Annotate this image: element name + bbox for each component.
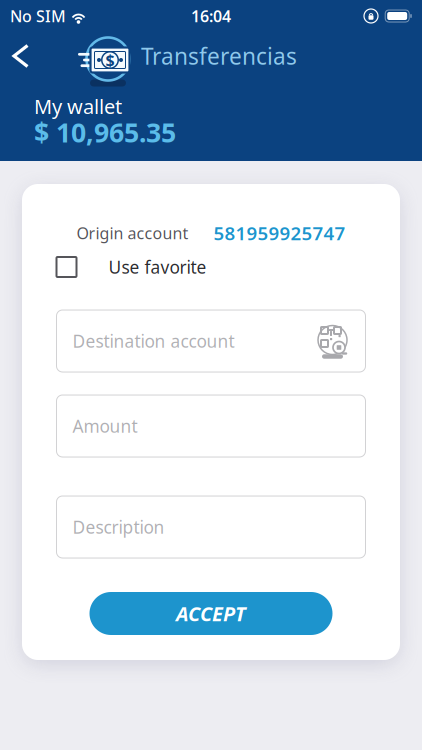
staticText: Amount [72,414,137,437]
staticText: $ 10,965.35 [34,115,176,150]
staticText: ACCEPT [176,600,246,627]
staticText: Origin account [76,222,188,244]
staticText: Description [72,515,164,538]
button[interactable]: Back [3,35,39,76]
staticText: My wallet [34,93,122,120]
staticText: 581959925747 [213,221,345,245]
staticText: 16:04 [191,5,231,27]
staticText: Use favorite [108,255,206,278]
staticText: $ [105,49,114,71]
button[interactable]: ACCEPT [89,592,332,635]
staticText: Transferencias [141,41,297,71]
button[interactable]: Use favorite checkbox [56,257,76,277]
staticText: No SIM [10,5,66,27]
staticText: Destination account [72,329,234,352]
